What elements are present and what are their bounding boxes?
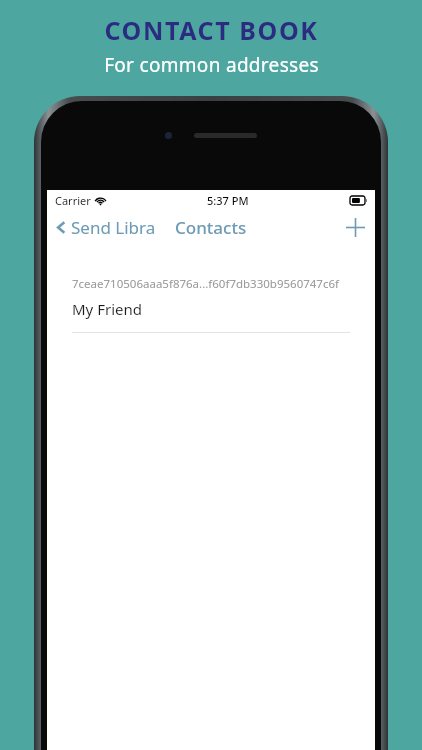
- button[interactable]: Add contact: [336, 214, 375, 241]
- staticText: Contacts: [175, 216, 247, 239]
- button[interactable]: Send Libra: [47, 212, 164, 243]
- staticText: For common addresses: [104, 52, 319, 78]
- staticText: CONTACT BOOK: [104, 13, 319, 47]
- button[interactable]: 7ceae710506aaa5f876a...f60f7db330b956074…: [47, 276, 375, 333]
- staticText: Carrier: [55, 193, 91, 208]
- staticText: 7ceae710506aaa5f876a...f60f7db330b956074…: [72, 276, 340, 292]
- staticText: 5:37 PM: [207, 193, 249, 208]
- staticText: Send Libra: [71, 216, 156, 239]
- staticText: My Friend: [72, 299, 142, 319]
